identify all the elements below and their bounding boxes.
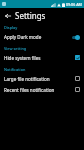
staticText: 09:06 AM <box>66 2 82 7</box>
staticText: Settings <box>15 10 46 21</box>
staticText: View setting <box>4 46 27 51</box>
staticText: Notification <box>4 67 26 72</box>
button[interactable]: Hide system files <box>0 52 84 63</box>
staticText: Apply Dark mode <box>4 34 71 40</box>
button[interactable]: Back <box>2 10 13 21</box>
button[interactable]: Large file notification <box>0 73 84 84</box>
button[interactable]: Recent files notification <box>0 84 84 95</box>
staticText: Large file notification <box>4 76 75 82</box>
staticText: Display <box>4 25 18 30</box>
button[interactable]: Apply Dark mode <box>0 31 84 42</box>
staticText: Hide system files <box>4 55 75 61</box>
staticText: Recent files notification <box>4 87 75 93</box>
